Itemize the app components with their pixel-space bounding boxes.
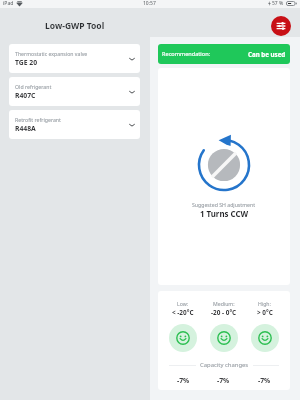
- staticText: > 0°C: [257, 308, 273, 317]
- staticText: Can be used: [248, 50, 286, 58]
- staticText: Medium:: [213, 300, 235, 307]
- staticText: 1 Turns CCW: [200, 209, 249, 220]
- button[interactable]: Old refrigerant: [9, 77, 140, 106]
- staticText: R407C: [15, 91, 36, 100]
- staticText: 10:57: [143, 0, 156, 7]
- staticText: Old refrigerant: [15, 83, 52, 90]
- staticText: TGE 20: [15, 58, 38, 67]
- staticText: Capacity changes: [200, 361, 249, 369]
- button[interactable]: Settings: [271, 16, 291, 36]
- button[interactable]: Recommendation:: [158, 44, 290, 64]
- staticText: < -20°C: [172, 308, 194, 317]
- staticText: iPad: [3, 0, 14, 7]
- staticText: 57 %: [272, 0, 284, 7]
- staticText: -7%: [217, 376, 230, 385]
- staticText: Low:: [177, 300, 189, 307]
- button[interactable]: Thermostatic expansion valve: [9, 44, 140, 73]
- staticText: Recommendation:: [162, 50, 211, 58]
- staticText: -7%: [258, 376, 271, 385]
- staticText: -20 - 0°C: [211, 308, 237, 317]
- staticText: R448A: [15, 124, 36, 133]
- button[interactable]: Retrofit refrigerant: [9, 110, 140, 139]
- staticText: Retrofit refrigerant: [15, 116, 61, 123]
- staticText: Thermostatic expansion valve: [15, 50, 88, 57]
- staticText: Low-GWP Tool: [45, 20, 105, 32]
- staticText: Suggested SH adjustment: [192, 201, 256, 208]
- staticText: -7%: [177, 376, 190, 385]
- staticText: High:: [258, 300, 271, 307]
